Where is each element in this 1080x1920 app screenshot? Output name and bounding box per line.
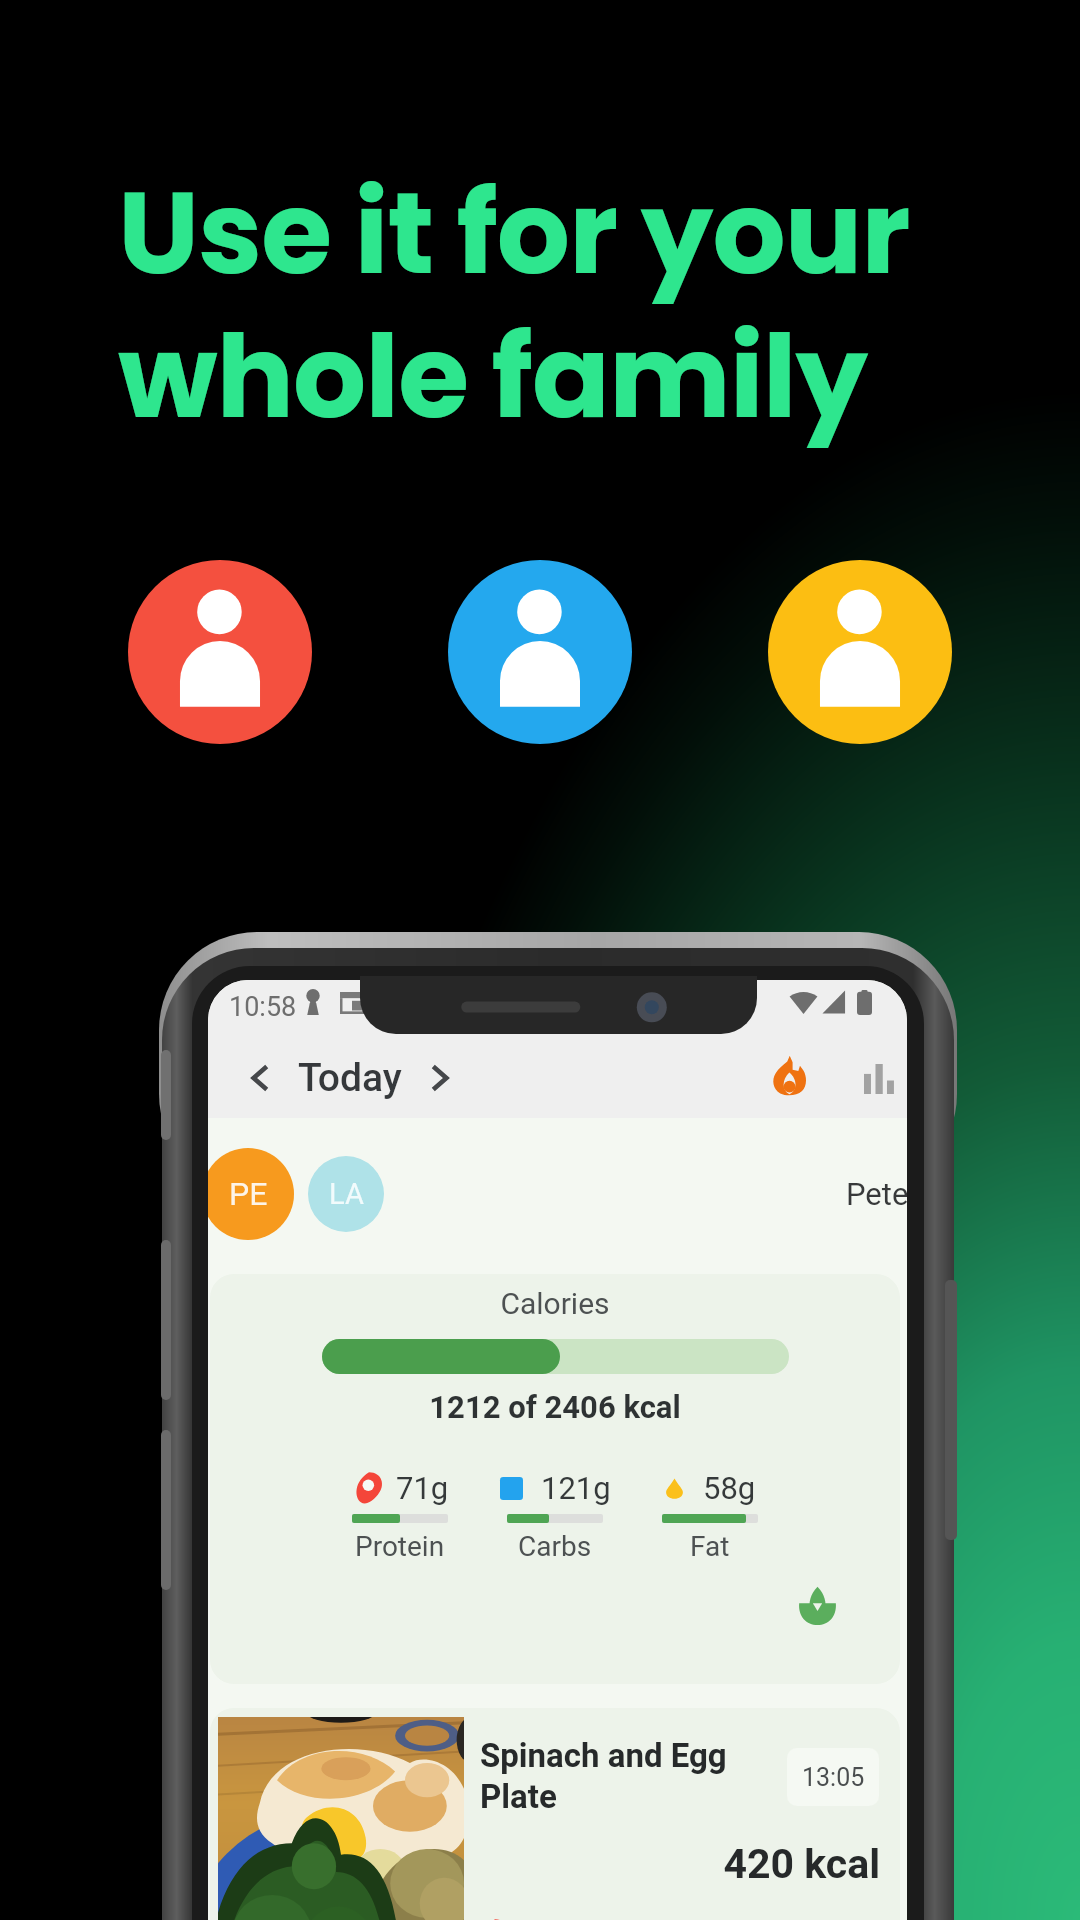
- staticText: LA: [329, 1177, 364, 1211]
- staticText: Fat: [690, 1530, 730, 1563]
- staticText: 121g: [541, 1470, 611, 1506]
- staticText: 58g: [703, 1470, 756, 1506]
- staticText: PE: [229, 1175, 268, 1213]
- staticText: 71g: [396, 1470, 449, 1506]
- staticText: Protein: [355, 1530, 445, 1563]
- button[interactable]: Statistics: [844, 1033, 907, 1118]
- staticText: Spinach and Egg Plate: [480, 1736, 750, 1816]
- button[interactable]: Family member: [768, 560, 952, 744]
- button[interactable]: 13:05: [787, 1748, 879, 1806]
- button[interactable]: Next day: [418, 1056, 462, 1100]
- staticText: 10:58: [229, 991, 297, 1023]
- button[interactable]: PE: [208, 1148, 294, 1240]
- staticText: Calories: [210, 1286, 900, 1321]
- staticText: Use it for your whole family: [118, 152, 910, 458]
- button[interactable]: Previous day: [238, 1056, 282, 1100]
- staticText: 1212 of 2406 kcal: [210, 1389, 900, 1425]
- button[interactable]: Calories: [210, 1274, 900, 1684]
- button[interactable]: Spinach and Egg Plate: [210, 1708, 900, 1920]
- button[interactable]: Family member: [448, 560, 632, 744]
- staticText: Peter: [846, 1176, 907, 1212]
- staticText: 420 kcal: [640, 1840, 880, 1888]
- button[interactable]: LA: [308, 1156, 384, 1232]
- staticText: Carbs: [518, 1530, 592, 1563]
- staticText: 13:05: [802, 1763, 865, 1792]
- button[interactable]: Family member: [128, 560, 312, 744]
- button[interactable]: Streak: [749, 1033, 829, 1118]
- button[interactable]: Today: [298, 1055, 402, 1101]
